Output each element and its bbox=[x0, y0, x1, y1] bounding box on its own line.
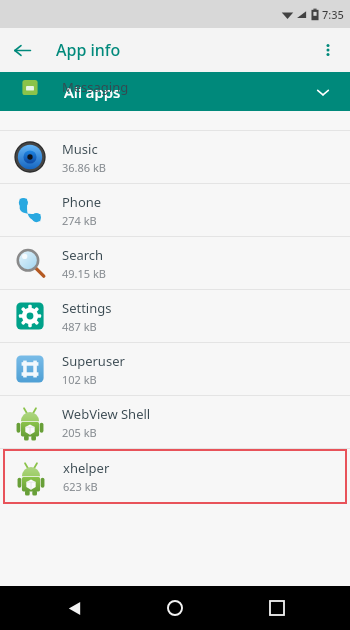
staticText: 102 kB bbox=[62, 372, 97, 387]
button[interactable]: Music bbox=[0, 131, 350, 184]
staticText: 7:35 bbox=[322, 7, 344, 22]
staticText: 205 kB bbox=[62, 425, 97, 440]
staticText: Messaging bbox=[62, 78, 129, 96]
staticText: 274 kB bbox=[62, 213, 97, 228]
button[interactable]: xhelper bbox=[3, 449, 347, 504]
button[interactable]: Back bbox=[0, 28, 44, 72]
button[interactable]: All apps bbox=[0, 72, 350, 111]
button[interactable]: Phone bbox=[0, 184, 350, 237]
button[interactable]: Superuser bbox=[0, 343, 350, 396]
staticText: 623 kB bbox=[63, 479, 98, 494]
button[interactable]: Back bbox=[46, 586, 102, 630]
staticText: 49.15 kB bbox=[62, 266, 106, 281]
button[interactable]: Home bbox=[147, 586, 203, 630]
button[interactable]: WebView Shell bbox=[0, 396, 350, 449]
staticText: Phone bbox=[62, 193, 102, 211]
staticText: Superuser bbox=[62, 352, 125, 370]
button[interactable]: Settings bbox=[0, 290, 350, 343]
button[interactable]: Recent apps bbox=[249, 586, 305, 630]
staticText: All apps bbox=[64, 82, 121, 102]
staticText: 487 kB bbox=[62, 319, 97, 334]
staticText: Search bbox=[62, 246, 104, 264]
staticText: 36.86 kB bbox=[62, 160, 106, 175]
staticText: Settings bbox=[62, 299, 112, 317]
staticText: App info bbox=[56, 39, 121, 61]
button[interactable]: Search bbox=[0, 237, 350, 290]
staticText: WebView Shell bbox=[62, 405, 151, 423]
button[interactable]: More options bbox=[306, 28, 350, 72]
staticText: Music bbox=[62, 140, 98, 158]
staticText: xhelper bbox=[63, 459, 110, 477]
